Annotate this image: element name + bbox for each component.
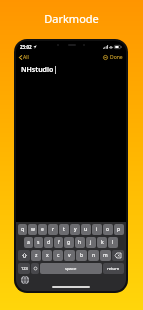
other: More options xyxy=(103,55,108,60)
staticText: p xyxy=(117,226,121,233)
button[interactable]: r xyxy=(48,224,58,235)
button[interactable]: Emoji xyxy=(31,263,39,274)
staticText: u xyxy=(84,226,88,233)
staticText: e xyxy=(41,226,44,233)
staticText: b xyxy=(80,252,84,259)
staticText: 23:02 xyxy=(20,44,32,50)
button[interactable]: All xyxy=(16,52,32,63)
staticText: return xyxy=(107,266,120,272)
button[interactable]: m xyxy=(100,250,111,261)
button[interactable]: t xyxy=(59,224,69,235)
staticText: t xyxy=(63,226,65,233)
button[interactable]: space xyxy=(40,263,102,274)
staticText: z xyxy=(35,252,38,259)
button[interactable]: d xyxy=(44,237,53,248)
button[interactable]: o xyxy=(103,224,113,235)
staticText: a xyxy=(27,239,30,246)
staticText: Done xyxy=(110,54,123,61)
button[interactable]: u xyxy=(81,224,91,235)
button[interactable]: c xyxy=(53,250,63,261)
button[interactable]: Shift xyxy=(18,250,30,261)
button[interactable]: return xyxy=(103,263,124,274)
button[interactable]: z xyxy=(31,250,41,261)
button[interactable]: Switch keyboard xyxy=(21,276,29,284)
staticText: Darkmode xyxy=(0,11,143,26)
staticText: j xyxy=(90,239,92,246)
button[interactable]: w xyxy=(28,224,37,235)
button[interactable]: y xyxy=(70,224,80,235)
button[interactable]: a xyxy=(24,237,33,248)
button[interactable]: k xyxy=(97,237,107,248)
button[interactable]: l xyxy=(108,237,118,248)
button[interactable]: p xyxy=(114,224,124,235)
staticText: s xyxy=(37,239,40,246)
button[interactable]: f xyxy=(54,237,63,248)
staticText: v xyxy=(68,252,71,259)
button[interactable]: j xyxy=(86,237,96,248)
staticText: o xyxy=(106,226,110,233)
button[interactable]: More options xyxy=(100,52,126,63)
button[interactable]: b xyxy=(76,250,87,261)
staticText: f xyxy=(58,239,60,246)
button[interactable]: NHstudio xyxy=(16,63,126,76)
button[interactable]: s xyxy=(34,237,43,248)
button[interactable]: i xyxy=(92,224,102,235)
button[interactable]: h xyxy=(75,237,85,248)
staticText: y xyxy=(74,226,77,233)
staticText: r xyxy=(52,226,55,233)
staticText: m xyxy=(103,252,108,259)
button[interactable]: v xyxy=(64,250,75,261)
staticText: d xyxy=(47,239,51,246)
button[interactable]: n xyxy=(88,250,99,261)
staticText: k xyxy=(101,239,104,246)
button[interactable]: q xyxy=(18,224,27,235)
staticText: g xyxy=(67,239,71,246)
staticText: All xyxy=(23,54,29,61)
button[interactable]: 123 xyxy=(18,263,30,274)
staticText: space xyxy=(65,266,77,272)
staticText: 123 xyxy=(21,266,28,271)
staticText: h xyxy=(78,239,82,246)
staticText: n xyxy=(92,252,96,259)
staticText: c xyxy=(57,252,60,259)
button[interactable]: Backspace xyxy=(112,250,124,261)
button[interactable]: g xyxy=(64,237,74,248)
staticText: w xyxy=(31,226,35,233)
button[interactable]: e xyxy=(38,224,47,235)
staticText: i xyxy=(96,226,98,233)
staticText: x xyxy=(46,252,49,259)
button[interactable]: x xyxy=(42,250,52,261)
staticText: l xyxy=(112,239,114,246)
staticText: NHstudio xyxy=(21,65,54,75)
staticText: q xyxy=(21,226,25,233)
